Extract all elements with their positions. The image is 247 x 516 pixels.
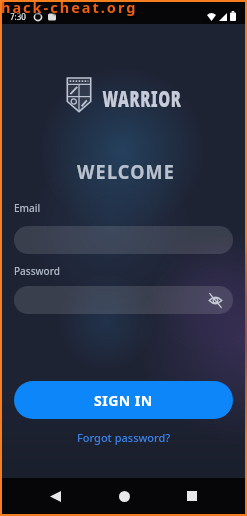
staticText: WARRIOR [93,82,191,108]
staticText: 7:30 [10,11,26,22]
button[interactable] [14,226,233,254]
button[interactable]: Forgot password? [73,426,175,449]
staticText: SIGN IN [94,391,153,410]
staticText: Password [14,264,60,278]
button[interactable] [177,481,207,511]
button[interactable]: SIGN IN [14,381,233,419]
staticText: hack-cheat.org [1,0,138,17]
button[interactable] [40,481,70,511]
staticText: Forgot password? [77,430,171,445]
staticText: WELCOME [77,157,176,185]
button[interactable] [109,481,139,511]
button[interactable] [14,286,233,314]
staticText: Email [14,201,41,215]
